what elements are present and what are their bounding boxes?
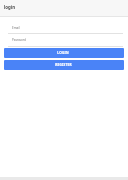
button[interactable]: LOGIN — [4, 48, 124, 58]
staticText: Password — [12, 38, 26, 42]
staticText: LOGIN — [57, 51, 69, 55]
button[interactable] — [0, 17, 128, 33]
button[interactable] — [0, 33, 128, 47]
staticText: login — [4, 4, 15, 10]
button[interactable]: login — [0, 0, 128, 16]
staticText: Email — [12, 26, 20, 30]
button[interactable]: REGISTER — [4, 60, 124, 70]
staticText: REGISTER — [55, 63, 72, 67]
